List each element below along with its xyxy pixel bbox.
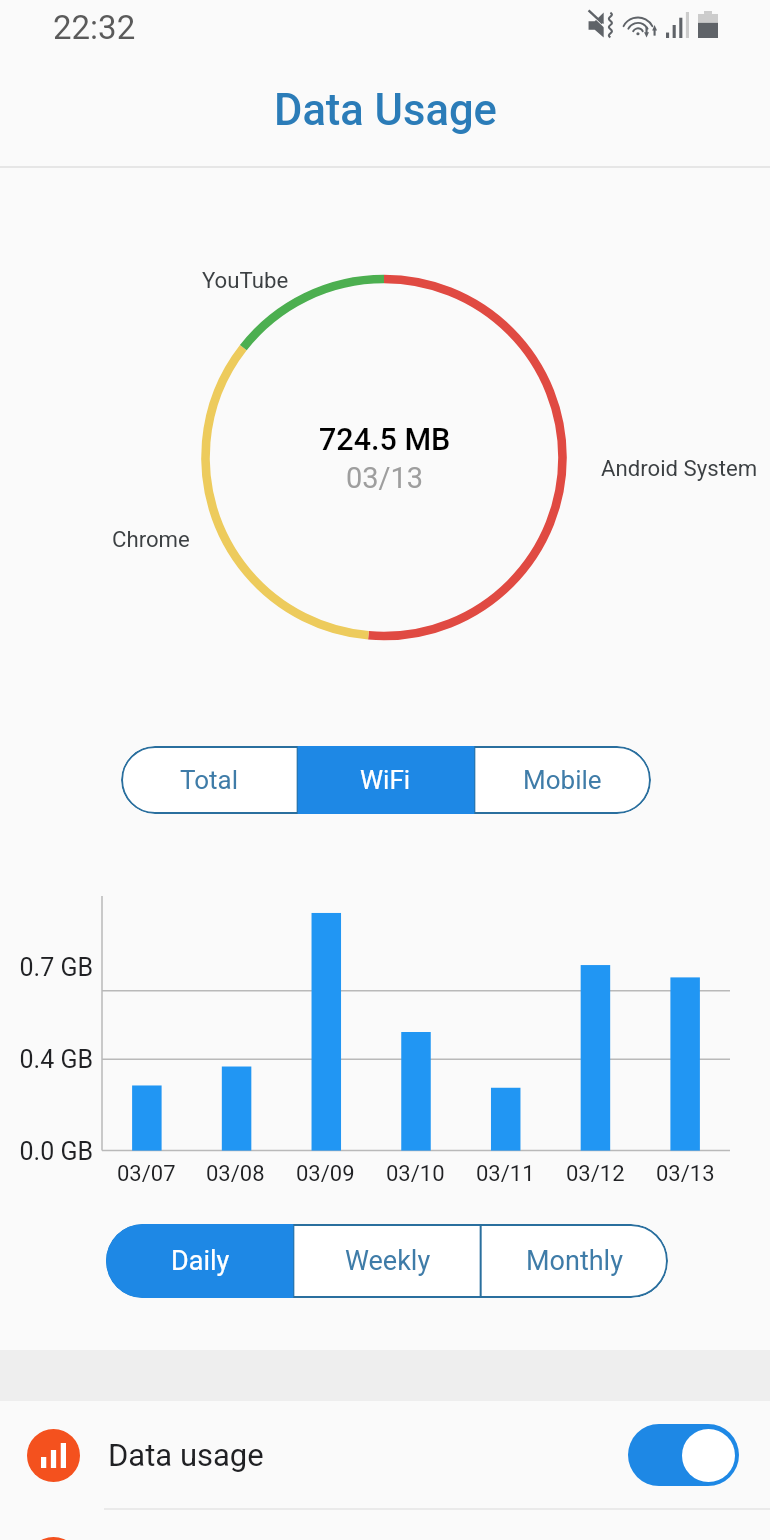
staticText: Mobile — [523, 765, 602, 795]
staticText: Total — [180, 765, 239, 795]
staticText: 03/07 — [117, 1161, 176, 1187]
staticText: 22:32 — [53, 8, 136, 47]
staticText: 03/10 — [386, 1161, 445, 1187]
staticText: Daily — [171, 1245, 230, 1277]
button[interactable]: WiFi — [297, 746, 474, 814]
staticText: YouTube — [202, 267, 289, 293]
staticText: 724.5 MB — [319, 422, 451, 458]
staticText: Data Usage — [274, 85, 497, 136]
staticText: Chrome — [112, 526, 190, 552]
button[interactable]: Mobile — [474, 746, 651, 814]
staticText: Weekly — [345, 1245, 431, 1277]
button[interactable]: Mobile data — [0, 1510, 770, 1540]
staticText: 03/09 — [296, 1161, 355, 1187]
button[interactable]: Daily — [106, 1224, 294, 1298]
button[interactable]: Data usage — [0, 1402, 770, 1508]
button[interactable]: Toggle Data usage — [628, 1424, 739, 1486]
staticText: 03/08 — [206, 1161, 265, 1187]
staticText: 0.4 GB — [19, 1045, 93, 1074]
staticText: 03/11 — [476, 1161, 535, 1187]
staticText: 03/13 — [346, 461, 424, 495]
button[interactable]: Monthly — [481, 1224, 668, 1298]
staticText: 03/13 — [656, 1161, 715, 1187]
button[interactable]: Weekly — [294, 1224, 481, 1298]
staticText: WiFi — [360, 765, 411, 795]
button[interactable]: Total — [121, 746, 297, 814]
staticText: 03/12 — [566, 1161, 625, 1187]
staticText: 0.7 GB — [19, 953, 93, 982]
staticText: Data usage — [108, 1437, 264, 1473]
staticText: Monthly — [526, 1245, 623, 1277]
staticText: 0.0 GB — [19, 1137, 93, 1166]
staticText: Android System — [601, 455, 758, 481]
